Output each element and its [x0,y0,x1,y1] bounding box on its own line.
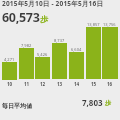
staticText: 13 [57,81,63,87]
staticText: 5,426 [37,52,48,57]
staticText: 毎日平均値 [2,102,32,110]
staticText: 13,857 [87,22,100,27]
staticText: 2015年5月10日 - 2015年5月16日 [2,0,104,8]
staticText: 13,756 [103,22,116,27]
staticText: 14 [74,81,80,87]
staticText: 10 [7,81,13,87]
staticText: 16 [107,81,113,87]
staticText: 7,803 [82,97,103,108]
staticText: 6,604 [71,47,82,52]
staticText: 15 [91,81,97,87]
staticText: 7,982 [21,43,32,48]
staticText: 8,737 [54,38,65,43]
staticText: 歩 [105,99,111,107]
staticText: 4,271 [4,57,15,62]
staticText: 11 [24,81,30,87]
staticText: 12 [40,81,46,87]
staticText: 60,573 [2,9,40,26]
staticText: 歩 [40,14,48,24]
